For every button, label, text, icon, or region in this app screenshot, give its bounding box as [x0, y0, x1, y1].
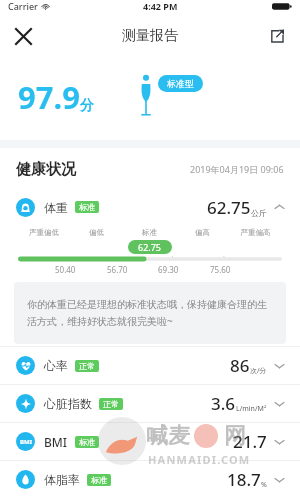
staticText: 心脏指数 [44, 396, 92, 411]
staticText: 标准型 [167, 78, 194, 89]
button[interactable]: Close [6, 19, 40, 53]
staticText: HANMAIDI.COM [148, 452, 251, 467]
staticText: 严重偏高 [229, 228, 282, 237]
staticText: 97.9 [18, 76, 80, 118]
button[interactable]: 体重 [0, 190, 300, 224]
staticText: 3.6 [211, 392, 236, 415]
staticText: 标准 [79, 202, 95, 212]
staticText: 次/分 [250, 366, 267, 376]
staticText: % [261, 480, 267, 490]
staticText: 50.40 [55, 264, 76, 275]
staticText: 喊麦 [146, 422, 190, 450]
staticText: BMI [44, 434, 68, 450]
button[interactable]: Share [260, 19, 294, 53]
staticText: 体脂率 [44, 472, 80, 487]
staticText: 分 [80, 97, 94, 115]
staticText: 偏低 [70, 228, 123, 237]
staticText: 18.7 [227, 468, 261, 491]
staticText: 体重 [44, 200, 68, 215]
staticText: 62.75 [207, 196, 251, 219]
button[interactable]: 心脏指数 [0, 385, 300, 422]
staticText: 你的体重已经是理想的标准状态哦，保持健康合理的生活方式，维持好状态就很完美啦~ [27, 298, 273, 328]
staticText: 心率 [44, 358, 68, 373]
staticText: 标准 [123, 228, 176, 237]
button[interactable]: 心率 [0, 347, 300, 384]
staticText: 69.30 [158, 264, 179, 275]
staticText: 网 [224, 422, 246, 450]
staticText: 健康状况 [16, 160, 76, 179]
staticText: 56.70 [107, 264, 128, 275]
staticText: 86 [230, 354, 250, 377]
staticText: 严重偏低 [18, 228, 70, 237]
staticText: 4:42 PM [143, 0, 178, 12]
staticText: 标准 [91, 475, 107, 485]
staticText: Carrier [8, 0, 38, 12]
staticText: BMI [20, 438, 32, 446]
staticText: 21.7 [233, 430, 267, 453]
button[interactable]: 体脂率 [0, 461, 300, 498]
staticText: 62.75 [138, 241, 162, 253]
staticText: L/min/M² [236, 404, 267, 414]
staticText: 2019年04月19日 09:06 [190, 163, 284, 175]
staticText: 公斤 [251, 208, 267, 218]
staticText: 正常 [79, 361, 95, 371]
staticText: 正常 [103, 399, 119, 409]
staticText: 偏高 [176, 228, 229, 237]
staticText: 测量报告 [122, 27, 178, 45]
button[interactable]: BMI [0, 423, 300, 460]
staticText: 75.60 [210, 264, 231, 275]
staticText: 标准 [79, 437, 95, 447]
